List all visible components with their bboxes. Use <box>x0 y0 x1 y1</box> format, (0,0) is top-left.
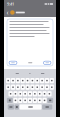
button[interactable]: Key <box>38 98 42 103</box>
button[interactable]: Key <box>38 91 42 96</box>
button[interactable]: Key <box>50 85 54 90</box>
button[interactable]: Contact <box>10 10 25 15</box>
button[interactable]: Key <box>47 98 53 103</box>
button[interactable]: Action <box>9 61 17 64</box>
button[interactable]: Key <box>35 78 39 83</box>
button[interactable]: Key <box>21 78 25 83</box>
button[interactable]: Key <box>25 85 30 90</box>
button[interactable]: Key <box>40 85 44 90</box>
button[interactable]: Key <box>16 85 20 90</box>
button[interactable]: Key <box>33 98 37 103</box>
button[interactable]: Key <box>11 78 15 83</box>
button[interactable]: Key <box>42 91 47 96</box>
button[interactable]: Key <box>7 98 13 103</box>
button[interactable]: Key <box>6 78 10 83</box>
button[interactable]: Key <box>11 85 15 90</box>
button[interactable]: Key <box>6 85 10 90</box>
button[interactable]: Key <box>18 98 22 103</box>
button[interactable]: Key <box>40 78 44 83</box>
button[interactable]: Key <box>33 91 37 96</box>
button[interactable]: Key <box>42 104 52 110</box>
button[interactable]: Key <box>8 91 13 96</box>
button[interactable]: Key <box>13 91 18 96</box>
button[interactable]: Key <box>42 98 47 103</box>
button[interactable]: Key <box>30 85 35 90</box>
staticText: 9:41 <box>7 1 14 7</box>
button[interactable]: Key <box>45 85 49 90</box>
button[interactable]: Key <box>50 78 54 83</box>
button[interactable]: Back <box>6 9 9 16</box>
button[interactable]: Key <box>25 78 30 83</box>
button[interactable]: Key <box>15 104 19 110</box>
button[interactable]: Key <box>23 91 27 96</box>
button[interactable]: Key <box>23 98 27 103</box>
button[interactable]: Key <box>30 78 35 83</box>
button[interactable]: Key <box>28 98 32 103</box>
staticText: ‹ <box>6 8 8 17</box>
button[interactable]: Key <box>28 91 32 96</box>
button[interactable]: Key <box>16 78 20 83</box>
button[interactable]: Action <box>43 61 51 64</box>
button[interactable]: Key <box>18 91 22 96</box>
button[interactable]: Key <box>13 98 18 103</box>
button[interactable]: Key <box>21 85 25 90</box>
button[interactable]: Key <box>8 104 14 110</box>
button[interactable]: Key <box>45 78 49 83</box>
button[interactable]: Key <box>35 85 39 90</box>
button[interactable]: Key <box>19 104 41 110</box>
button[interactable]: Key <box>47 91 52 96</box>
